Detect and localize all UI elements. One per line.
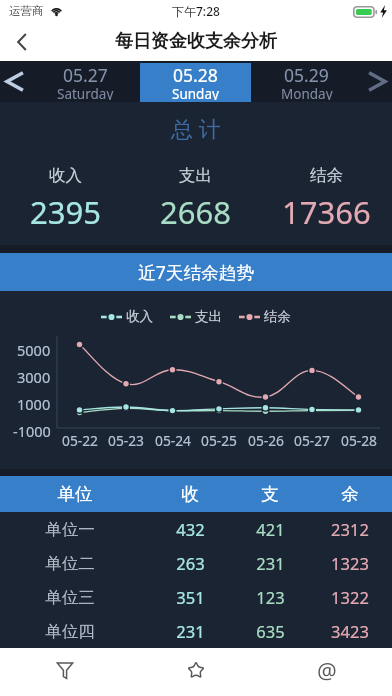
button[interactable]: Favorite <box>130 648 261 696</box>
button[interactable]: 单位二 <box>0 546 392 580</box>
staticText: 05-23 <box>108 431 145 447</box>
staticText: 1000 <box>17 394 51 414</box>
staticText: 231 <box>256 552 285 574</box>
staticText: 05-24 <box>155 431 192 447</box>
staticText: 3000 <box>17 367 51 387</box>
staticText: 支出 <box>179 165 212 186</box>
staticText: 收入 <box>126 308 153 325</box>
staticText: 05.27 <box>63 63 108 87</box>
staticText: 351 <box>176 586 205 608</box>
button[interactable]: 单位三 <box>0 580 392 614</box>
staticText: -1000 <box>13 421 51 441</box>
staticText: 支 <box>261 483 279 505</box>
staticText: Monday <box>281 85 333 100</box>
staticText: 123 <box>256 586 285 608</box>
staticText: 432 <box>176 518 205 540</box>
staticText: 421 <box>256 518 285 540</box>
staticText: Sunday <box>172 85 219 100</box>
button[interactable]: Next day <box>362 61 392 102</box>
staticText: 05-25 <box>201 431 238 447</box>
button[interactable]: 05.27 <box>30 63 140 102</box>
staticText: 1323 <box>331 552 369 574</box>
staticText: 余 <box>341 483 359 505</box>
staticText: 单位三 <box>45 587 95 608</box>
staticText: 结余 <box>264 308 291 325</box>
button[interactable]: 单位四 <box>0 614 392 648</box>
staticText: 单位一 <box>45 519 95 540</box>
staticText: 3423 <box>331 620 369 642</box>
button[interactable]: 05.29 <box>251 63 362 102</box>
staticText: 单位四 <box>45 621 95 642</box>
staticText: 263 <box>176 552 205 574</box>
staticText: 单位 <box>57 483 93 505</box>
button[interactable]: 单位 <box>0 476 392 512</box>
staticText: @ <box>317 655 337 685</box>
staticText: 2395 <box>30 191 101 233</box>
staticText: 每日资金收支余分析 <box>115 30 277 53</box>
staticText: 05-27 <box>294 431 331 447</box>
staticText: 运营商 <box>9 4 44 18</box>
button[interactable]: Filter <box>0 648 130 696</box>
button[interactable]: 05.28 <box>140 63 251 102</box>
staticText: 231 <box>176 620 205 642</box>
staticText: 05-26 <box>248 431 285 447</box>
staticText: 收 <box>181 483 199 505</box>
staticText: 结余 <box>310 165 343 186</box>
staticText: 2312 <box>331 518 369 540</box>
button[interactable]: 单位一 <box>0 512 392 546</box>
staticText: 05.28 <box>173 63 218 87</box>
staticText: 2668 <box>160 191 231 233</box>
staticText: Saturday <box>57 85 114 100</box>
staticText: 05-28 <box>341 431 378 447</box>
button[interactable]: Mail <box>261 648 392 696</box>
staticText: 17366 <box>282 191 371 233</box>
staticText: 支出 <box>195 308 222 325</box>
staticText: 05.29 <box>284 63 329 87</box>
staticText: 收入 <box>49 165 82 186</box>
staticText: 1322 <box>331 586 369 608</box>
staticText: 5000 <box>17 340 51 360</box>
staticText: 总 计 <box>171 113 221 143</box>
button[interactable]: 近7天结余趋势 <box>0 253 392 291</box>
button[interactable]: Previous day <box>0 61 30 102</box>
button[interactable]: Back <box>0 22 44 61</box>
staticText: 05-22 <box>62 431 99 447</box>
staticText: 下午7:28 <box>172 3 220 19</box>
staticText: 近7天结余趋势 <box>138 260 255 284</box>
staticText: 单位二 <box>45 553 95 574</box>
staticText: 635 <box>256 620 285 642</box>
